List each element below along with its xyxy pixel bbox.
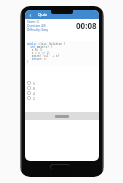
button[interactable]: 5 (27, 80, 99, 85)
staticText: main (37, 45, 44, 48)
button[interactable] (55, 115, 69, 118)
staticText: 00:08 (76, 20, 97, 31)
staticText: return (27, 57, 44, 60)
staticText: "val" (42, 54, 51, 57)
staticText: x; (44, 57, 48, 60)
staticText: + x); (51, 54, 61, 57)
button[interactable]: Back (27, 12, 33, 18)
staticText: 2; (47, 51, 51, 54)
staticText: Question 4/6 (27, 24, 46, 28)
staticText: 2 (33, 96, 35, 100)
button[interactable]: 4 (27, 90, 99, 95)
staticText: x %= 3; (27, 48, 44, 51)
staticText: int (27, 45, 37, 48)
staticText: x = x (27, 51, 42, 54)
staticText: } (27, 60, 29, 63)
staticText: Quiz (38, 12, 48, 18)
staticText: Score: 0 (27, 20, 39, 24)
staticText: class (37, 42, 49, 45)
staticText: Difficulty: Easy (27, 28, 49, 32)
staticText: public (27, 42, 37, 45)
staticText: 8 (33, 86, 35, 90)
staticText: print( (27, 54, 42, 57)
button[interactable]: 8 (27, 85, 99, 90)
staticText: 4 (33, 91, 35, 95)
staticText: << (42, 51, 47, 54)
button[interactable]: 2 (27, 95, 99, 100)
staticText: Solution { (49, 42, 66, 45)
staticText: (x) { (44, 45, 53, 48)
staticText: 5 (33, 81, 35, 85)
